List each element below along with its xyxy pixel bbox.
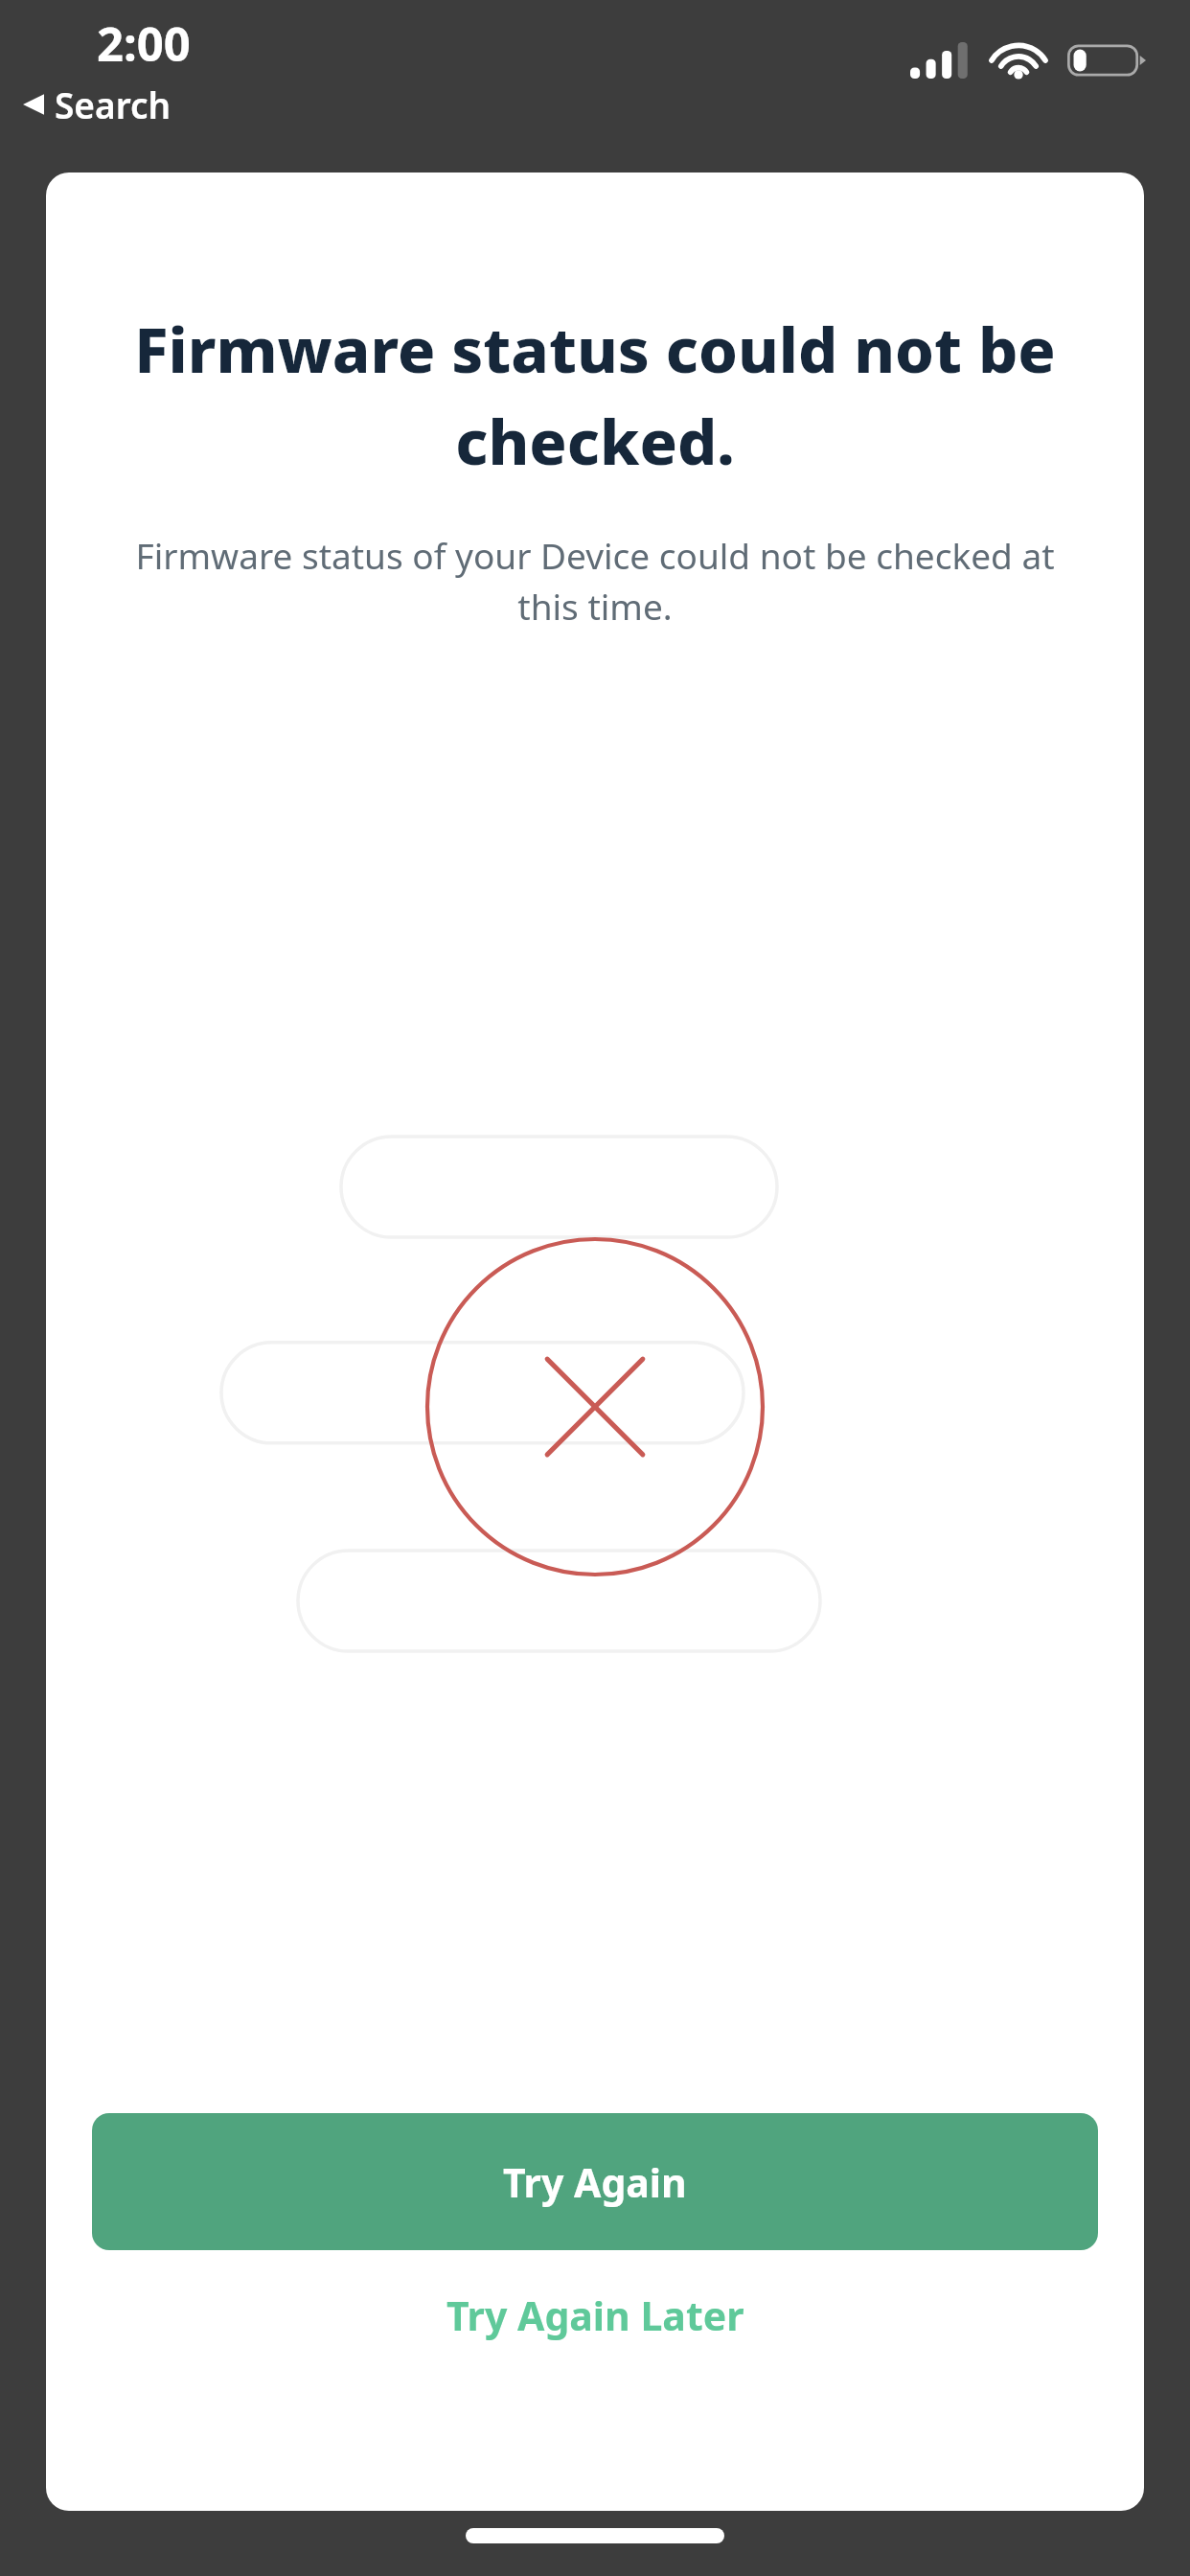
- staticText: Firmware status could not be checked.: [98, 307, 1092, 483]
- staticText: Firmware status of your Device could not…: [132, 531, 1058, 630]
- staticText: Try Again: [503, 2155, 687, 2209]
- staticText: Search: [55, 80, 172, 128]
- staticText: 2:00: [97, 11, 191, 76]
- staticText: Try Again Later: [446, 2288, 744, 2342]
- button[interactable]: Try Again: [92, 2113, 1098, 2250]
- button[interactable]: Try Again Later: [379, 2269, 812, 2361]
- other: Back to Search: [23, 91, 44, 118]
- button[interactable]: Back to Search: [23, 80, 172, 128]
